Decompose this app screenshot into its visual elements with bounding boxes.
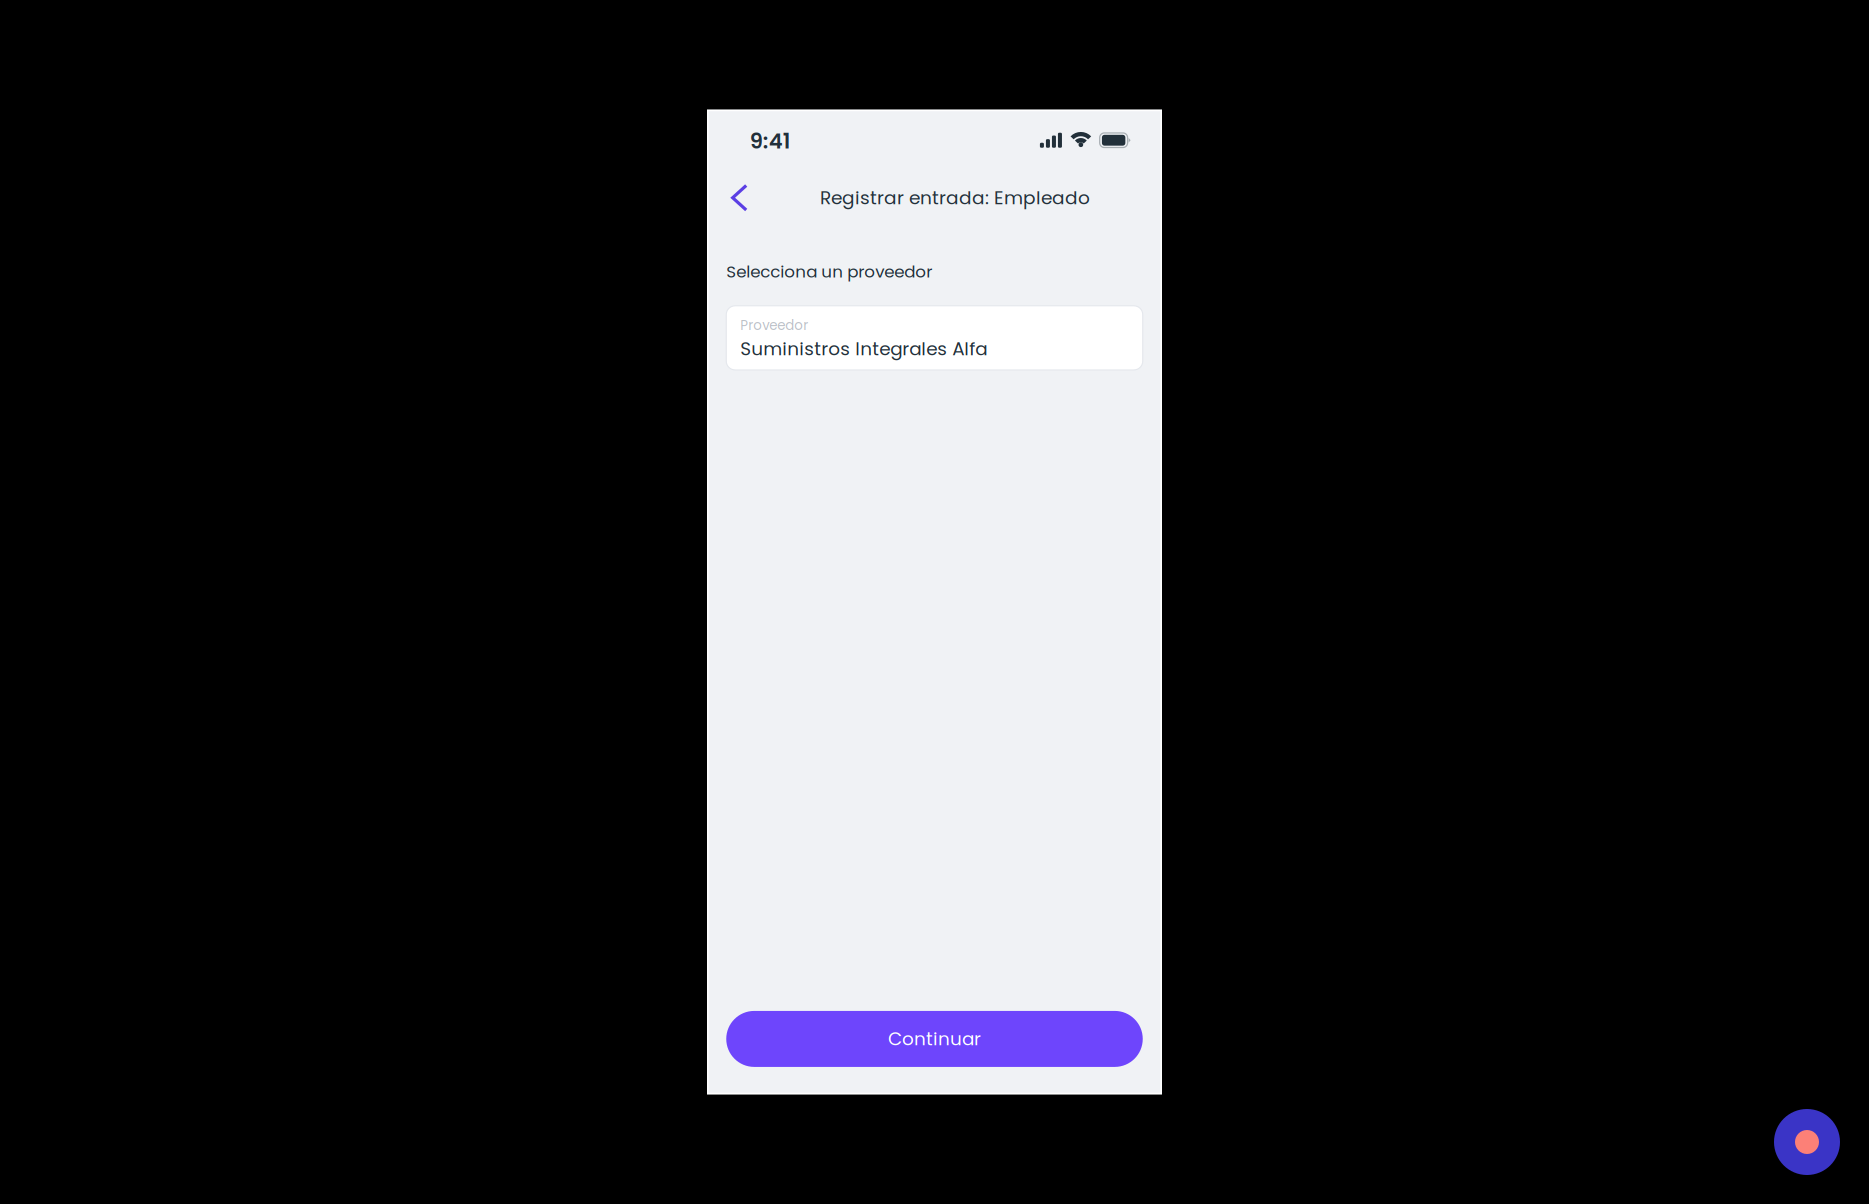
button[interactable]: Proveedor [726,306,1143,370]
staticText: Registrar entrada: Empleado [820,185,1090,211]
staticText: Suministros Integrales Alfa [740,336,987,362]
staticText: 9:41 [750,126,791,156]
button[interactable]: Atrás [707,173,748,222]
button[interactable]: Grabar [1774,1109,1840,1175]
button[interactable]: Continuar [726,1011,1143,1067]
staticText: Selecciona un proveedor [726,260,932,283]
staticText: Continuar [888,1026,981,1052]
staticText: Proveedor [740,316,808,335]
